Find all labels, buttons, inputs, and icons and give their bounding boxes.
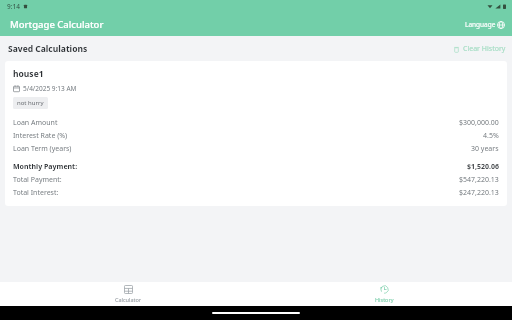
button[interactable]: Calculator [101, 283, 156, 305]
staticText: Language [465, 20, 496, 29]
staticText: $300,000.00 [459, 118, 499, 128]
staticText: Monthly Payment: [13, 162, 78, 172]
staticText: Saved Calculations [8, 43, 88, 55]
button[interactable]: Clear History [447, 40, 512, 58]
other: Language [497, 21, 505, 29]
button[interactable]: house1 [5, 61, 507, 206]
staticText: Loan Term (years) [13, 144, 72, 154]
other: Clear History [453, 46, 460, 53]
staticText: Calculator [115, 296, 142, 303]
staticText: 30 years [471, 144, 499, 154]
staticText: 9:14 [7, 2, 20, 11]
staticText: $1,520.06 [467, 162, 499, 172]
staticText: Total Interest: [13, 188, 59, 198]
staticText: $547,220.13 [459, 175, 499, 185]
staticText: $247,220.13 [459, 188, 499, 198]
other: Calculator [124, 285, 133, 294]
staticText: 5/4/2025 9:13 AM [23, 84, 77, 93]
staticText: Interest Rate (%) [13, 131, 68, 141]
staticText: History [375, 296, 394, 303]
staticText: house1 [13, 68, 44, 80]
staticText: Total Payment: [13, 175, 62, 185]
staticText: not hurry [17, 99, 44, 107]
other: History [380, 285, 389, 294]
staticText: Clear History [463, 44, 506, 54]
button[interactable]: History [361, 283, 408, 305]
staticText: Mortgage Calculator [10, 18, 104, 31]
button[interactable]: Language [458, 16, 512, 33]
staticText: 4.5% [483, 131, 499, 141]
staticText: Loan Amount [13, 118, 58, 128]
